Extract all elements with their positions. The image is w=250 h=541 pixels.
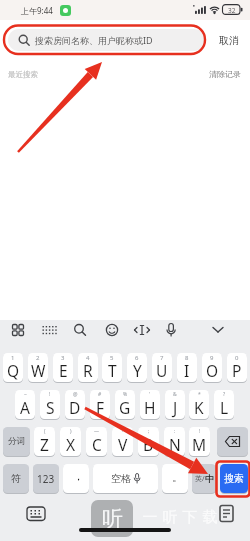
staticText: U [156, 360, 168, 381]
button[interactable]: 清除记录 [205, 66, 245, 82]
button[interactable]: ) [60, 427, 81, 456]
button[interactable]: 123 [33, 464, 59, 493]
staticText: 取消 [219, 34, 239, 47]
button[interactable]: ! [40, 390, 60, 419]
staticText: # [98, 391, 102, 398]
staticText: 符 [11, 472, 21, 485]
staticText: N [169, 434, 181, 455]
staticText: 1 [11, 354, 15, 362]
staticText: 3 [61, 354, 65, 362]
staticText: 。 [172, 470, 183, 484]
staticText: 32 [228, 6, 236, 15]
button[interactable]: # [90, 390, 110, 419]
staticText: 英/ [195, 474, 205, 484]
button[interactable]: 6 [127, 353, 147, 382]
staticText: Q [7, 360, 20, 381]
staticText: 一听下载 [140, 508, 220, 527]
staticText: 9 [210, 354, 214, 362]
staticText: : [174, 428, 176, 435]
staticText: 6 [135, 354, 139, 362]
button[interactable] [217, 427, 248, 456]
button[interactable]: 符 [3, 464, 29, 493]
staticText: D [69, 397, 81, 418]
button[interactable]: 7 [152, 353, 172, 382]
staticText: 2 [36, 354, 40, 362]
staticText: A [20, 397, 30, 418]
button[interactable]: & [165, 390, 185, 419]
button[interactable]: 9 [202, 353, 222, 382]
staticText: ， [73, 469, 84, 483]
button[interactable]: ! [189, 427, 210, 456]
staticText: 搜索 [224, 472, 244, 485]
staticText: C [92, 434, 102, 455]
button[interactable]: ' [140, 390, 160, 419]
staticText: 搜索房间名称、用户昵称或ID [35, 34, 153, 46]
staticText: 7 [160, 354, 164, 362]
button[interactable]: 3 [53, 353, 73, 382]
staticText: ! [199, 428, 201, 435]
staticText: ? [223, 391, 226, 398]
staticText: W [31, 360, 46, 381]
staticText: M [192, 434, 207, 455]
staticText: Y [133, 360, 142, 381]
button[interactable]: 1 [3, 353, 23, 382]
staticText: L [220, 397, 229, 418]
staticText: ( [44, 428, 46, 435]
staticText: O [206, 360, 219, 381]
staticText: K [194, 397, 204, 418]
staticText: 123 [37, 472, 55, 486]
staticText: * [198, 391, 201, 398]
button[interactable]: 搜索房间名称、用户昵称或ID [8, 29, 205, 51]
staticText: 最近搜索 [8, 70, 38, 79]
staticText: ~ [24, 391, 27, 398]
staticText: V [118, 434, 128, 455]
button[interactable]: 8 [177, 353, 197, 382]
button[interactable]: @ [65, 390, 85, 419]
button[interactable]: : [164, 427, 185, 456]
button[interactable]: — [86, 427, 107, 456]
staticText: & [173, 391, 177, 398]
staticText: B [143, 434, 154, 455]
button[interactable]: 空格 [93, 464, 158, 493]
button[interactable]: 取消 [211, 30, 247, 50]
staticText: ' [149, 391, 151, 398]
staticText: T [108, 360, 117, 381]
staticText: 上午9:44 [21, 5, 53, 16]
button[interactable]: 分词 [3, 427, 30, 456]
button[interactable]: 5 [102, 353, 122, 382]
button[interactable]: ， [63, 464, 89, 493]
button[interactable]: · [112, 427, 133, 456]
button[interactable]: % [115, 390, 135, 419]
staticText: 中 [205, 473, 214, 484]
button[interactable]: 0 [227, 353, 247, 382]
button[interactable]: 搜索 [220, 464, 248, 493]
staticText: I [184, 360, 190, 381]
staticText: H [144, 397, 156, 418]
staticText: 空格 [111, 472, 131, 485]
staticText: ; [148, 428, 150, 435]
button[interactable]: 。 [162, 464, 188, 493]
button[interactable]: ? [214, 390, 234, 419]
button[interactable]: 2 [28, 353, 48, 382]
button[interactable]: 英/ [192, 464, 216, 493]
staticText: ) [70, 428, 72, 435]
staticText: P [232, 360, 242, 381]
staticText: 听 [102, 506, 123, 532]
staticText: 8 [185, 354, 189, 362]
staticText: @ [73, 391, 78, 398]
staticText: 清除记录 [209, 69, 241, 79]
staticText: J [173, 397, 178, 418]
staticText: · [122, 428, 124, 435]
button[interactable]: ; [138, 427, 159, 456]
staticText: ! [49, 391, 51, 398]
staticText: G [119, 397, 131, 418]
staticText: Z [40, 434, 49, 455]
button[interactable]: * [189, 390, 209, 419]
button[interactable]: ( [34, 427, 55, 456]
staticText: 分词 [8, 436, 25, 447]
button[interactable]: ~ [15, 390, 35, 419]
staticText: 5 [110, 354, 114, 362]
staticText: 0 [235, 354, 239, 362]
staticText: 4 [86, 354, 90, 362]
button[interactable]: 4 [78, 353, 98, 382]
